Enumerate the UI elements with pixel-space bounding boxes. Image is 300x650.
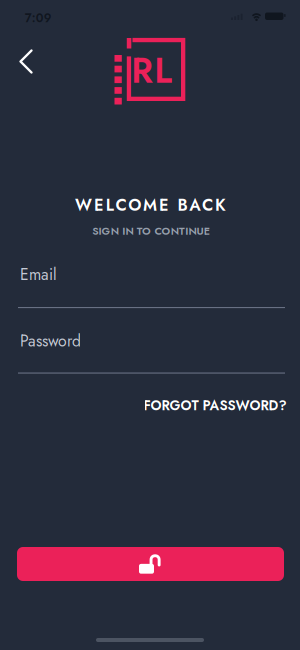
staticText: WELCOME BACK	[75, 193, 226, 217]
button[interactable]: Sign In	[17, 547, 284, 581]
staticText: 7:09	[25, 9, 52, 27]
staticText: SIGN IN TO CONTINUE	[92, 223, 210, 239]
button[interactable]: FORGOT PASSWORD?	[143, 396, 286, 415]
staticText: Email	[20, 263, 57, 286]
button[interactable]: Back	[11, 44, 41, 78]
staticText: FORGOT PASSWORD?	[143, 396, 286, 415]
staticText: RL	[131, 45, 172, 96]
staticText: Password	[20, 330, 81, 352]
